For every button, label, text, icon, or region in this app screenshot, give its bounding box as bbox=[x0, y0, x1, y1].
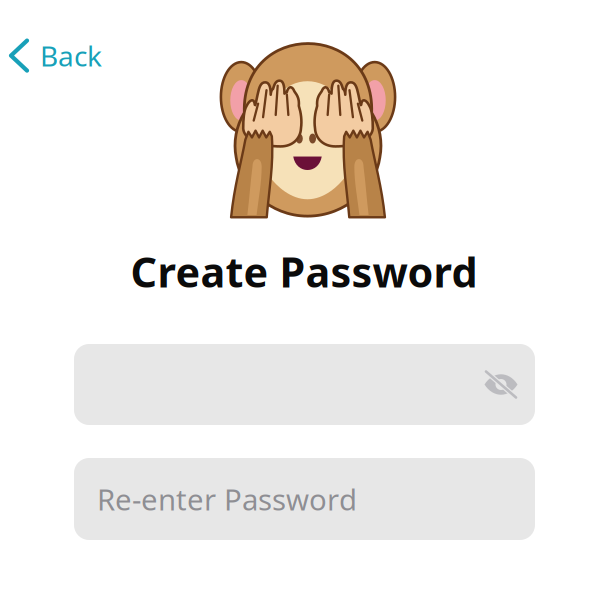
staticText: Back bbox=[40, 37, 102, 74]
button[interactable]: Back bbox=[0, 28, 116, 83]
staticText: Create Password bbox=[130, 244, 477, 299]
staticText: Re-enter Password bbox=[97, 479, 357, 518]
